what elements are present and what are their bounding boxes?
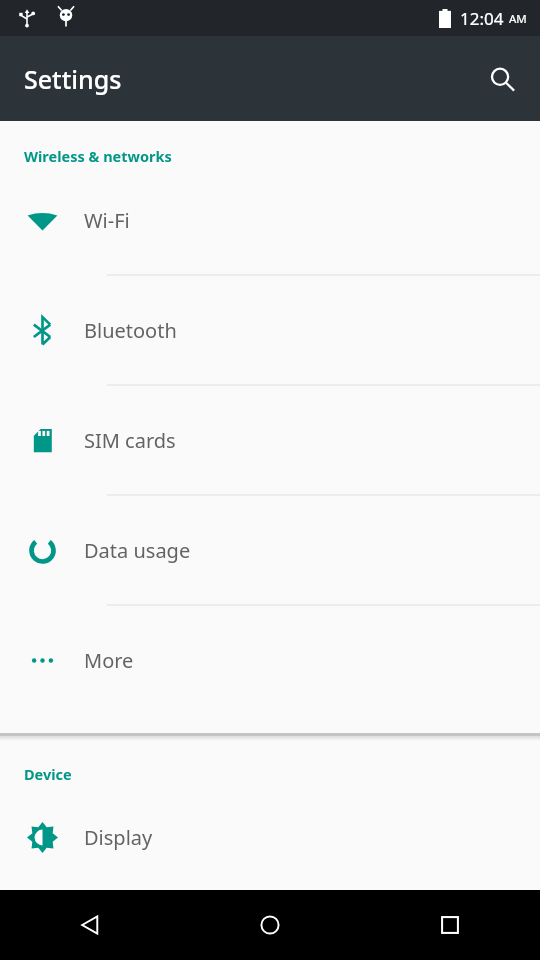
staticText: Device bbox=[24, 764, 72, 784]
button[interactable]: SIM cards bbox=[0, 386, 540, 496]
staticText: AM bbox=[509, 11, 527, 27]
staticText: 12:04 bbox=[460, 7, 504, 30]
button[interactable]: Display bbox=[0, 784, 540, 890]
button[interactable]: Recent apps bbox=[360, 890, 540, 960]
staticText: Wi-Fi bbox=[84, 207, 130, 234]
staticText: Wireless & networks bbox=[24, 146, 172, 166]
button[interactable]: Home bbox=[180, 890, 360, 960]
staticText: SIM cards bbox=[84, 427, 176, 454]
button[interactable]: Search bbox=[477, 54, 527, 104]
staticText: Settings bbox=[24, 62, 122, 96]
staticText: More bbox=[84, 647, 134, 674]
button[interactable]: Wi-Fi bbox=[0, 166, 540, 276]
button[interactable]: More bbox=[0, 606, 540, 714]
button[interactable]: Back bbox=[0, 890, 180, 960]
staticText: Data usage bbox=[84, 537, 191, 564]
staticText: Bluetooth bbox=[84, 317, 177, 344]
staticText: Display bbox=[84, 824, 153, 851]
button[interactable]: Data usage bbox=[0, 496, 540, 606]
button[interactable]: Bluetooth bbox=[0, 276, 540, 386]
